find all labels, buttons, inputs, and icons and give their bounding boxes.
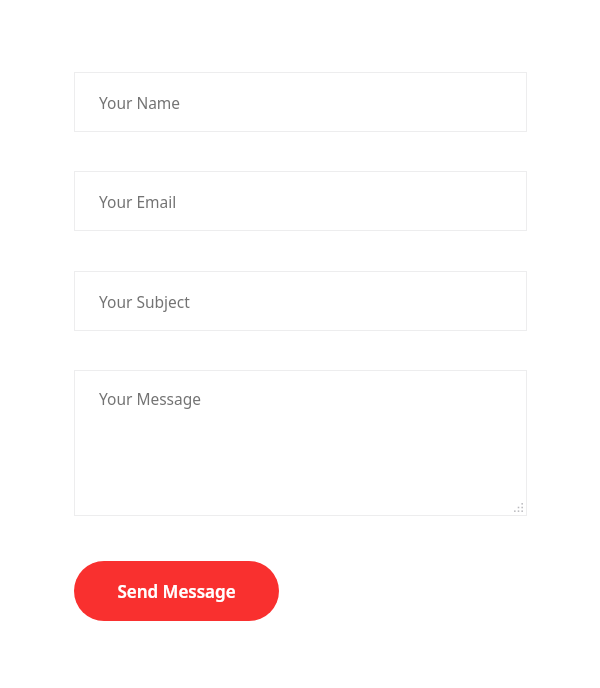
button[interactable]: Your Message	[74, 370, 527, 516]
button[interactable]: Send Message	[74, 561, 279, 621]
button[interactable]: Your Email	[74, 171, 527, 231]
staticText: Your Message	[99, 388, 202, 409]
button[interactable]: Your Name	[74, 72, 527, 132]
button[interactable]: Your Subject	[74, 271, 527, 331]
staticText: Your Email	[99, 191, 177, 212]
staticText: Your Subject	[99, 291, 190, 312]
staticText: Your Name	[99, 92, 181, 113]
staticText: Send Message	[117, 580, 236, 603]
